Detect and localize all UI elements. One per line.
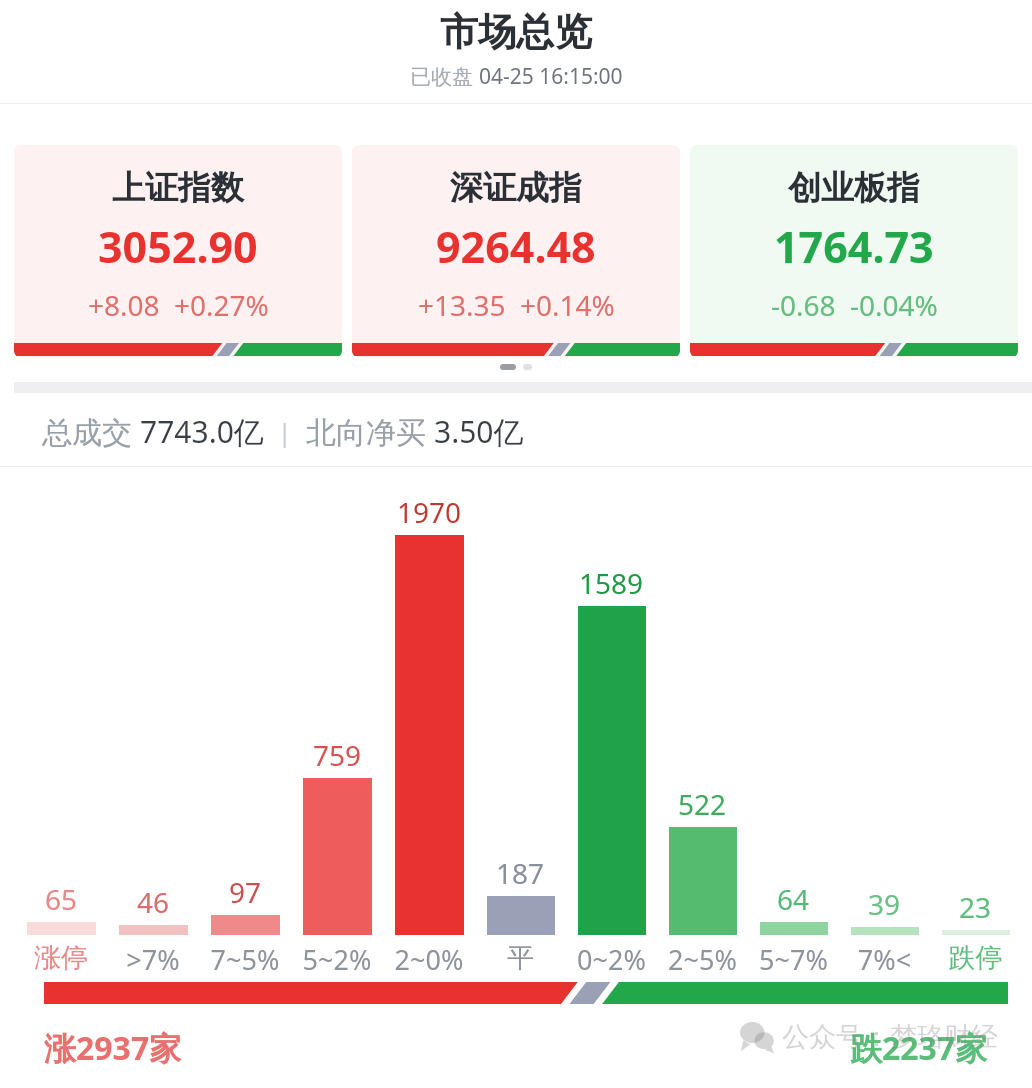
staticText: 64 bbox=[777, 880, 810, 918]
staticText: +8.08 bbox=[88, 286, 160, 324]
staticText: 总成交 bbox=[42, 411, 140, 452]
staticText: 3.50亿 bbox=[434, 411, 524, 452]
staticText: 7743.0亿 bbox=[140, 411, 264, 452]
staticText: 65 bbox=[45, 880, 78, 918]
staticText: 创业板指 bbox=[788, 167, 920, 209]
staticText: 0~2% bbox=[569, 941, 654, 978]
staticText: 39 bbox=[868, 885, 901, 923]
staticText: 北向净买 bbox=[306, 411, 434, 452]
staticText: 1589 bbox=[579, 564, 644, 602]
staticText: 市场总览 bbox=[0, 8, 1032, 56]
staticText: 1970 bbox=[397, 493, 462, 531]
staticText: 公众号：梦珞财经 bbox=[782, 1020, 998, 1054]
staticText: -0.04% bbox=[850, 286, 938, 324]
button[interactable]: 总成交 bbox=[42, 411, 1032, 452]
staticText: 2~5% bbox=[660, 941, 745, 978]
staticText: 5~7% bbox=[751, 941, 836, 978]
staticText: 涨停 bbox=[18, 941, 104, 975]
staticText: 5~2% bbox=[294, 941, 380, 978]
staticText: 759 bbox=[313, 736, 362, 774]
staticText: 187 bbox=[496, 854, 545, 892]
staticText: 涨2937家 bbox=[44, 1026, 182, 1070]
staticText: +13.35 bbox=[418, 286, 506, 324]
staticText: 522 bbox=[678, 785, 727, 823]
staticText: -0.68 bbox=[771, 286, 836, 324]
staticText: 上证指数 bbox=[112, 167, 244, 209]
button[interactable]: 创业板指 bbox=[690, 145, 1018, 357]
staticText: 平 bbox=[478, 941, 563, 975]
staticText: | bbox=[264, 414, 306, 449]
staticText: 7%< bbox=[842, 941, 927, 978]
staticText: 3052.90 bbox=[98, 217, 258, 276]
staticText: 已收盘 bbox=[410, 62, 479, 91]
staticText: 7~5% bbox=[202, 941, 288, 978]
staticText: 9264.48 bbox=[436, 217, 596, 276]
staticText: 97 bbox=[229, 873, 262, 911]
staticText: +0.27% bbox=[174, 286, 269, 324]
staticText: 46 bbox=[137, 883, 170, 921]
staticText: 23 bbox=[959, 888, 992, 926]
staticText: 2~0% bbox=[386, 941, 472, 978]
staticText: 04-25 16:15:00 bbox=[479, 62, 623, 91]
staticText: +0.14% bbox=[520, 286, 615, 324]
staticText: >7% bbox=[110, 941, 196, 978]
staticText: 1764.73 bbox=[774, 217, 934, 276]
staticText: 跌停 bbox=[933, 941, 1018, 975]
button[interactable]: 深证成指 bbox=[352, 145, 680, 357]
staticText: 跌2237家 bbox=[850, 1026, 988, 1070]
button[interactable]: 上证指数 bbox=[14, 145, 342, 357]
staticText: 深证成指 bbox=[450, 167, 582, 209]
